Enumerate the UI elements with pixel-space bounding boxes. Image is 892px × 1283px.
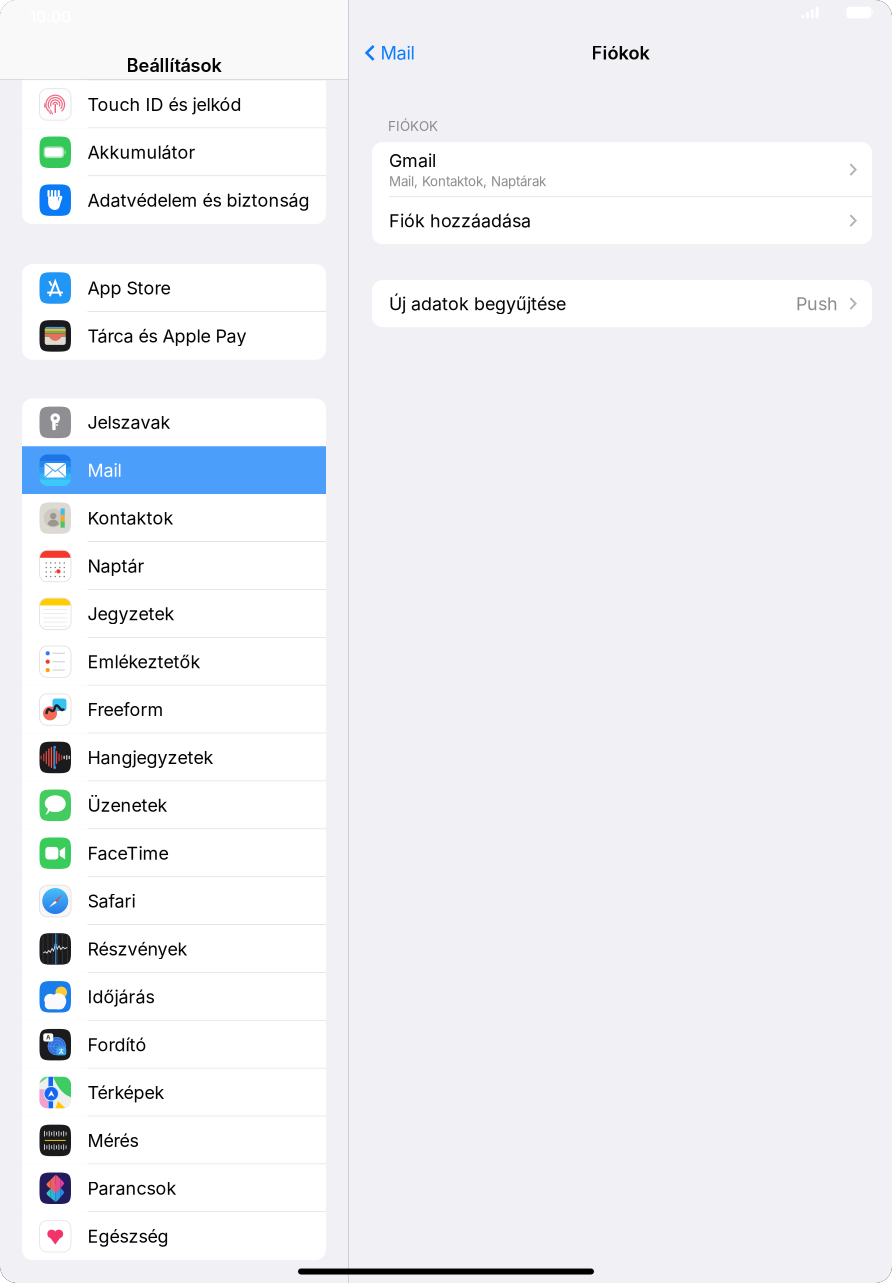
staticText: Üzenetek	[87, 794, 167, 816]
button[interactable]: Tárca és Apple Pay	[22, 312, 326, 360]
button[interactable]: Freeform	[22, 686, 326, 733]
staticText: Gmail	[389, 150, 436, 171]
button[interactable]: Fiók hozzáadása	[372, 197, 872, 244]
button[interactable]: Gmail	[372, 142, 872, 197]
button[interactable]: Naptár	[22, 542, 326, 590]
staticText: Mérés	[87, 1130, 138, 1151]
staticText: Kontaktok	[87, 507, 173, 529]
staticText: FIÓKOK	[388, 118, 438, 134]
button[interactable]: Képernyőidő	[22, 33, 326, 80]
button[interactable]: Akkumulátor	[22, 128, 326, 176]
button[interactable]: Mail	[22, 446, 326, 494]
staticText: Hangjegyzetek	[87, 747, 213, 768]
button[interactable]: Mail	[349, 36, 414, 70]
staticText: Naptár	[87, 555, 144, 577]
button[interactable]: Hangjegyzetek	[22, 733, 326, 781]
staticText: Mail, Kontaktok, Naptárak	[389, 173, 546, 189]
button[interactable]: Safari	[22, 877, 326, 925]
staticText: FaceTime	[87, 842, 168, 864]
staticText: Részvények	[87, 938, 187, 960]
button[interactable]: Időjárás	[22, 973, 326, 1021]
staticText: Fiók hozzáadása	[389, 210, 531, 231]
staticText: Tárca és Apple Pay	[87, 325, 246, 347]
staticText: Mail	[87, 459, 121, 481]
button[interactable]: Touch ID és jelkód	[22, 80, 326, 128]
staticText: Időjárás	[87, 986, 154, 1008]
button[interactable]: Mérés	[22, 1116, 326, 1164]
button[interactable]: Adatvédelem és biztonság	[22, 176, 326, 224]
button[interactable]: Emlékeztetők	[22, 638, 326, 686]
staticText: Egészség	[87, 1225, 168, 1247]
button[interactable]: Parancsok	[22, 1164, 326, 1212]
button[interactable]: Üzenetek	[22, 781, 326, 829]
staticText: A	[46, 1034, 50, 1041]
staticText: Push	[796, 293, 838, 314]
staticText: Adatvédelem és biztonság	[87, 189, 309, 211]
staticText: Jelszavak	[87, 411, 170, 433]
staticText: Fordító	[87, 1034, 146, 1055]
button[interactable]: FaceTime	[22, 829, 326, 877]
staticText: Safari	[87, 890, 135, 912]
staticText: Emlékeztetők	[87, 651, 200, 672]
staticText: Beállítások	[126, 54, 221, 76]
staticText: Jegyzetek	[87, 603, 174, 625]
staticText: Képernyőidő	[87, 46, 193, 67]
staticText: Akkumulátor	[87, 141, 195, 163]
button[interactable]: Új adatok begyűjtése	[372, 280, 872, 327]
button[interactable]: Jelszavak	[22, 398, 326, 446]
button[interactable]: Térképek	[22, 1069, 326, 1116]
button[interactable]: A	[22, 1021, 326, 1069]
button[interactable]: Egészség	[22, 1212, 326, 1260]
staticText: Parancsok	[87, 1177, 176, 1199]
button[interactable]: Kontaktok	[22, 494, 326, 542]
button[interactable]: Jegyzetek	[22, 590, 326, 638]
staticText: Mail	[380, 42, 414, 64]
staticText: Freeform	[87, 699, 163, 720]
staticText: Új adatok begyűjtése	[389, 293, 566, 314]
staticText: Touch ID és jelkód	[87, 94, 241, 115]
staticText: Térképek	[87, 1082, 164, 1103]
button[interactable]: Részvények	[22, 925, 326, 973]
staticText: App Store	[87, 277, 170, 299]
staticText: Fiókok	[591, 42, 649, 64]
button[interactable]: App Store	[22, 264, 326, 312]
